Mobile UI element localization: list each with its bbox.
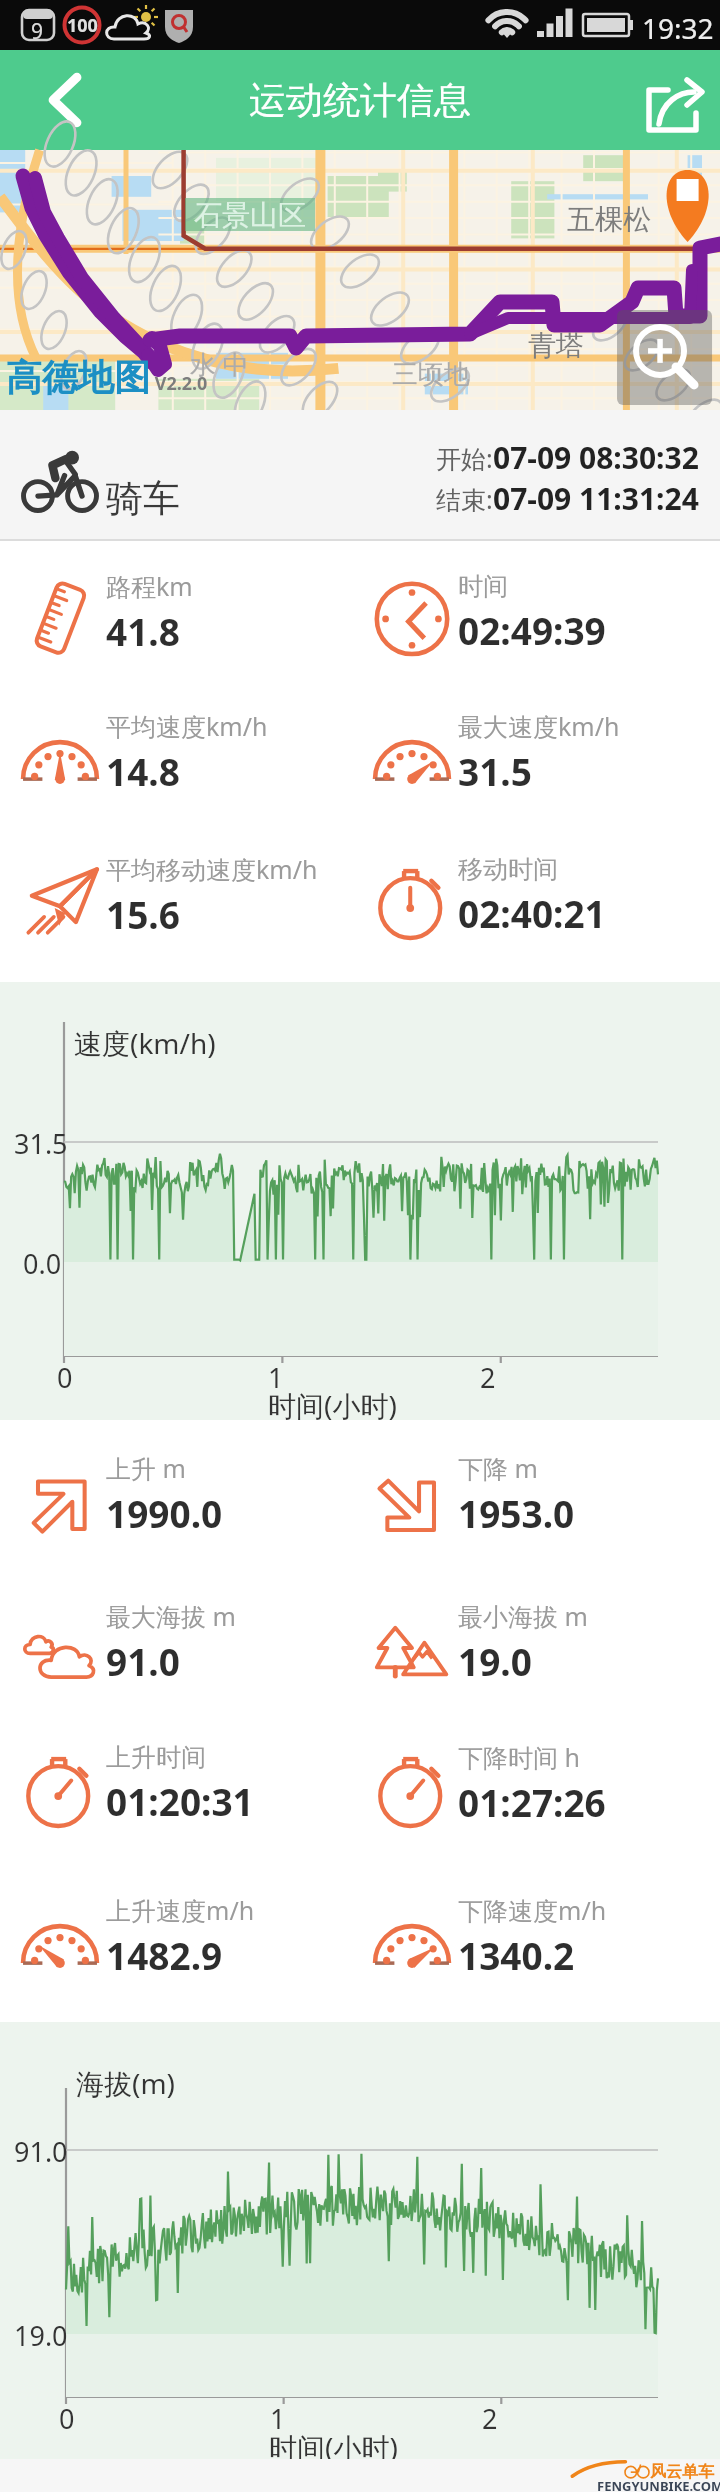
staticText: 2: [480, 1359, 496, 1396]
staticText: 19:32: [642, 9, 714, 47]
button[interactable]: 时间: [352, 541, 712, 686]
staticText: 下降速度m/h: [458, 1893, 607, 1927]
staticText: 三顷地: [392, 358, 470, 391]
staticText: 19.0: [14, 2317, 68, 2354]
staticText: 1340.2: [458, 1930, 575, 1980]
staticText: 1482.9: [106, 1930, 223, 1980]
staticText: 五棵松: [567, 202, 651, 237]
staticText: 1: [268, 1359, 284, 1396]
staticText: 速度(km/h): [74, 1024, 216, 1062]
staticText: 上升 m: [106, 1451, 186, 1485]
staticText: 07-09 08:30:32: [493, 437, 699, 478]
button[interactable]: 下降速度m/h: [352, 1853, 712, 2022]
button[interactable]: 平均速度km/h: [0, 686, 360, 821]
staticText: 结束:: [436, 482, 493, 516]
button[interactable]: 最小海拔 m: [352, 1571, 712, 1716]
staticText: 开始:: [436, 441, 493, 475]
staticText: 时间(小时): [269, 2428, 398, 2466]
staticText: 骑车: [106, 475, 180, 522]
staticText: 时间: [458, 571, 508, 602]
staticText: 0: [59, 2400, 75, 2437]
staticText: 31.5: [458, 746, 532, 796]
staticText: 100: [67, 13, 98, 38]
staticText: 水 中: [190, 346, 249, 382]
staticText: V2.2.0: [150, 371, 208, 396]
staticText: 最小海拔 m: [458, 1599, 588, 1633]
staticText: 9: [31, 17, 44, 46]
staticText: 运动统计信息: [249, 77, 471, 124]
staticText: 下降 m: [458, 1451, 538, 1485]
button[interactable]: 下降时间 h: [352, 1716, 712, 1853]
staticText: 01:27:26: [458, 1777, 606, 1827]
staticText: 0: [57, 1359, 73, 1396]
staticText: 1990.0: [106, 1488, 223, 1538]
button[interactable]: 上升 m: [0, 1420, 360, 1571]
staticText: 路程km: [106, 569, 193, 603]
staticText: 91.0: [106, 1636, 180, 1686]
staticText: 1: [270, 2400, 286, 2437]
staticText: 时间(小时): [268, 1386, 397, 1424]
staticText: 最大速度km/h: [458, 709, 620, 743]
button[interactable]: 路程km: [0, 541, 360, 686]
staticText: 01:20:31: [106, 1776, 254, 1826]
button[interactable]: 最大速度km/h: [352, 686, 712, 821]
staticText: 石景山区: [194, 198, 306, 231]
button[interactable]: 下降 m: [352, 1420, 712, 1571]
button[interactable]: 移动时间: [352, 821, 712, 972]
staticText: 平均速度km/h: [106, 709, 268, 743]
staticText: 青塔: [528, 328, 584, 363]
staticText: 19.0: [458, 1636, 532, 1686]
staticText: 0.0: [23, 1245, 62, 1282]
staticText: 31.5: [14, 1125, 68, 1162]
button[interactable]: 最大海拔 m: [0, 1571, 360, 1716]
staticText: 91.0: [14, 2133, 68, 2170]
staticText: 15.6: [106, 889, 180, 939]
staticText: 1953.0: [458, 1488, 575, 1538]
staticText: FENGYUNBIKE.COM: [597, 2477, 720, 2492]
staticText: 上升时间: [106, 1742, 206, 1773]
staticText: 02:49:39: [458, 605, 606, 655]
staticText: 平均移动速度km/h: [106, 852, 318, 886]
button[interactable]: Share: [620, 50, 720, 150]
button[interactable]: Back: [0, 50, 118, 150]
button[interactable]: 平均移动速度km/h: [0, 821, 360, 972]
button[interactable]: 上升时间: [0, 1716, 360, 1853]
staticText: 07-09 11:31:24: [493, 478, 699, 519]
staticText: 海拔(m): [76, 2064, 175, 2102]
staticText: 2: [482, 2400, 498, 2437]
staticText: 上升速度m/h: [106, 1893, 255, 1927]
staticText: 移动时间: [458, 854, 558, 885]
button[interactable]: 上升速度m/h: [0, 1853, 360, 2022]
staticText: 41.8: [106, 606, 180, 656]
staticText: 风云单车: [650, 2462, 714, 2482]
staticText: 14.8: [106, 746, 180, 796]
staticText: 最大海拔 m: [106, 1599, 236, 1633]
staticText: 02:40:21: [458, 888, 606, 938]
staticText: 下降时间 h: [458, 1740, 580, 1774]
staticText: 高德地图: [6, 355, 150, 400]
